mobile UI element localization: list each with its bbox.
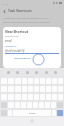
staticText: device. Tasks fall under Shortcuts, deep…: [3, 21, 50, 24]
button[interactable]: English: [13, 110, 51, 116]
button[interactable]: Back: [0, 7, 8, 15]
button[interactable]: Home: [30, 119, 34, 123]
button[interactable]: Suggestion: [26, 71, 29, 74]
staticText: Task Shortcuts: [8, 8, 32, 13]
button[interactable]: Suggestion: [45, 71, 48, 74]
button[interactable]: Suggestion: [16, 71, 19, 74]
staticText: 12:30: [2, 2, 9, 5]
button[interactable]: Suggestion: [35, 71, 38, 74]
button[interactable]: Enter: [57, 110, 63, 116]
staticText: Shortcut name: [5, 35, 19, 38]
staticText: email: [5, 39, 12, 43]
staticText: Activity shortcuts can be launched on yo…: [3, 17, 49, 20]
staticText: @tel/sms/dir/@: [5, 49, 25, 53]
button[interactable]: Suggestion: [7, 71, 10, 74]
staticText: Shortcut Uri: [5, 45, 17, 48]
staticText: ADD SHORTCUT: [14, 57, 31, 60]
button[interactable]: ADD SHORTCUT: [13, 56, 32, 61]
button[interactable]: Suggestion: [54, 71, 57, 74]
staticText: English: [29, 112, 36, 115]
staticText: New Shortcut: [5, 29, 29, 34]
